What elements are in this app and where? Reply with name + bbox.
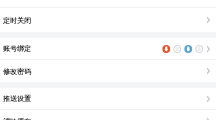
staticText: 推送设置 [3,94,31,103]
staticText: 账号绑定 [3,44,31,53]
other: Open [204,44,212,54]
button[interactable]: Linked accounts [162,44,203,54]
other: Open [204,116,212,120]
staticText: 修改密码 [3,67,31,76]
button[interactable]: 清除缓存 [0,110,216,120]
other: Open [204,66,212,76]
other: Open [204,15,212,25]
staticText: 定时关闭 [3,16,31,25]
button[interactable]: 修改密码 [0,60,216,82]
button[interactable]: 定时关闭 [0,8,216,32]
button[interactable]: 推送设置 [0,88,216,109]
button[interactable]: 账号绑定 [0,38,216,59]
other: Open [204,94,212,104]
staticText: 清除缓存 [3,117,31,120]
